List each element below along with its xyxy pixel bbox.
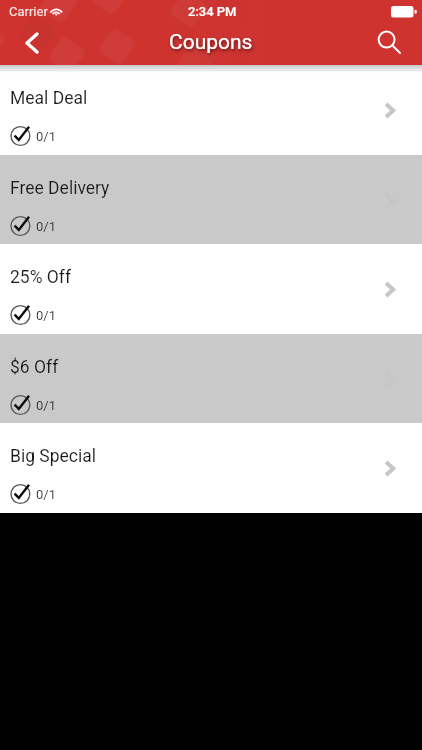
staticText: $6 Off <box>10 357 59 378</box>
button[interactable]: Search <box>368 21 412 64</box>
staticText: 0/1 <box>36 398 56 413</box>
staticText: Carrier <box>9 4 48 19</box>
button[interactable]: 25% Off <box>0 244 422 334</box>
staticText: Big Special <box>10 446 97 467</box>
button[interactable]: $6 Off <box>0 334 422 423</box>
staticText: 0/1 <box>36 129 56 144</box>
button[interactable]: Meal Deal <box>0 65 422 155</box>
staticText: 25% Off <box>10 267 72 288</box>
staticText: 0/1 <box>36 487 56 502</box>
staticText: Free Delivery <box>10 178 110 199</box>
staticText: Meal Deal <box>10 88 88 109</box>
staticText: 0/1 <box>36 219 56 234</box>
button[interactable]: Free Delivery <box>0 155 422 244</box>
button[interactable]: Big Special <box>0 423 422 513</box>
staticText: 0/1 <box>36 308 56 323</box>
button[interactable]: Back <box>10 21 54 64</box>
staticText: 2:34 PM <box>188 4 237 19</box>
staticText: Coupons <box>169 30 253 55</box>
